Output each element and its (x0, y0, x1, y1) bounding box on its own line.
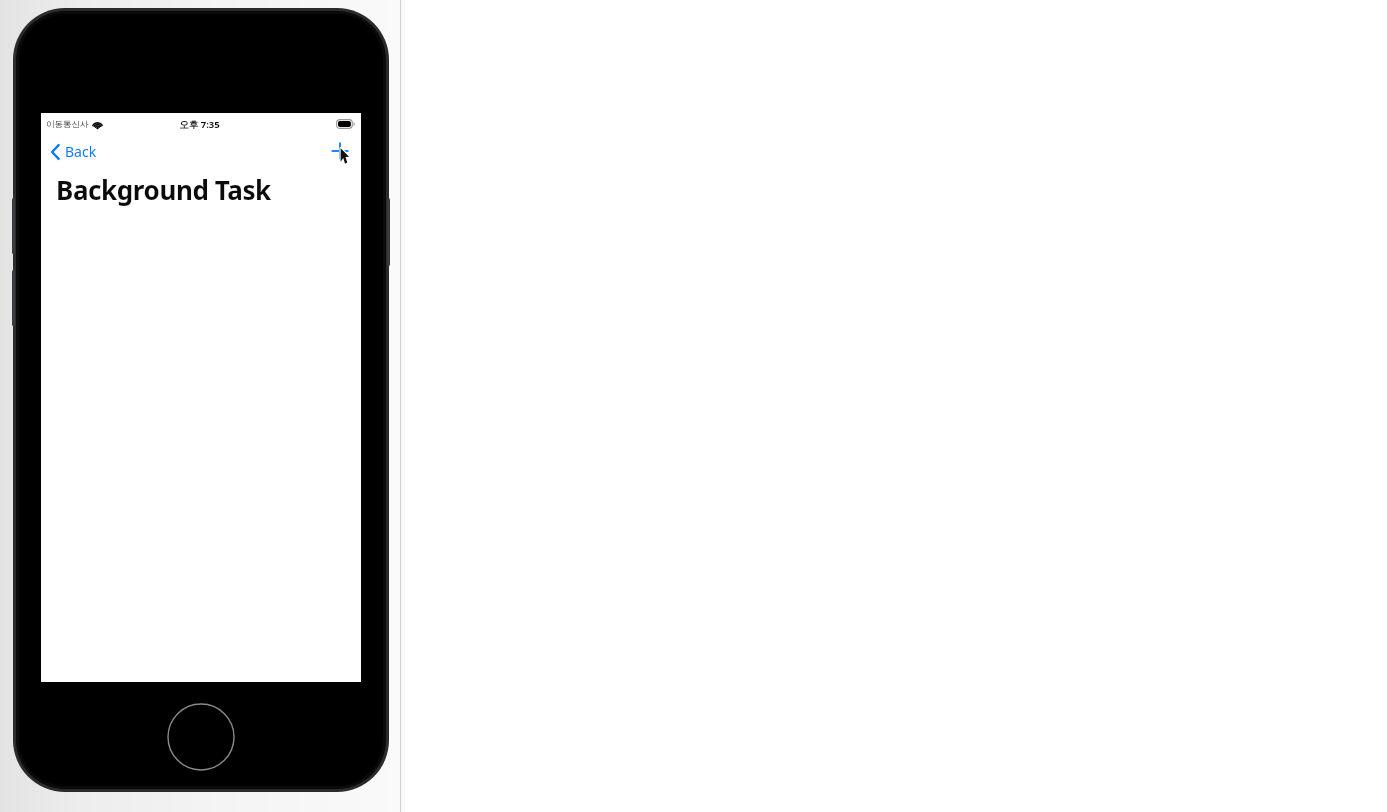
other: Home (167, 703, 235, 771)
button[interactable]: Back (41, 138, 107, 165)
staticText: 이동통신사 (46, 119, 89, 130)
button[interactable]: Add (329, 140, 351, 162)
staticText: Background Task (56, 172, 271, 207)
staticText: Back (65, 142, 97, 161)
staticText: 오후 7:35 (179, 118, 220, 131)
